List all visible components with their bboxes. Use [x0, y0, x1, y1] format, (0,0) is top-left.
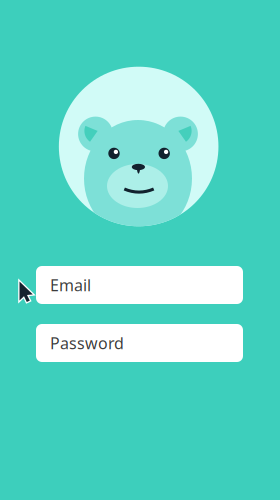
staticText: Password [50, 332, 124, 354]
button[interactable]: Email [36, 266, 243, 304]
staticText: Email [50, 274, 91, 296]
button[interactable]: Password [36, 324, 243, 362]
